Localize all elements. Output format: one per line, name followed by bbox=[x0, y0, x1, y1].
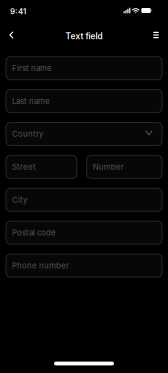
staticText: Phone number bbox=[12, 261, 69, 270]
button[interactable]: City bbox=[6, 188, 162, 211]
button[interactable]: Postal code bbox=[6, 221, 162, 244]
button[interactable]: Number bbox=[87, 155, 162, 178]
staticText: Country bbox=[12, 129, 43, 139]
button[interactable]: Back bbox=[0, 23, 22, 47]
staticText: Last name bbox=[12, 96, 50, 106]
button[interactable]: Menu bbox=[145, 23, 167, 47]
staticText: 9:41 bbox=[10, 6, 26, 16]
button[interactable]: First name bbox=[6, 57, 162, 80]
staticText: Text field bbox=[65, 31, 102, 41]
button[interactable]: Street bbox=[6, 155, 77, 178]
staticText: Postal code bbox=[12, 228, 56, 237]
button[interactable]: Phone number bbox=[6, 254, 162, 277]
staticText: First name bbox=[12, 63, 52, 73]
staticText: Street bbox=[12, 162, 36, 172]
button[interactable]: Country bbox=[6, 122, 162, 145]
staticText: Number bbox=[93, 162, 124, 172]
staticText: City bbox=[12, 195, 27, 204]
button[interactable]: Last name bbox=[6, 90, 162, 113]
